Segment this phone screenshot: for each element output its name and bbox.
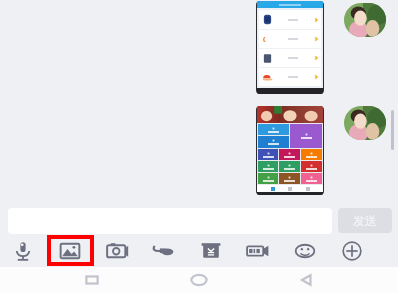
button[interactable]: Red packet (190, 234, 232, 267)
button[interactable]: Contact avatar (344, 106, 386, 140)
staticText: 发送 (353, 213, 377, 228)
button[interactable]: Home (175, 267, 223, 293)
button[interactable]: Emoji (284, 234, 326, 267)
button[interactable]: GIF (237, 234, 279, 267)
button[interactable]: Back (282, 267, 330, 293)
button[interactable]: Recents (68, 267, 116, 293)
button[interactable]: Voice message (2, 234, 44, 267)
button[interactable]: Shared screenshot (256, 1, 324, 94)
button[interactable]: Contact avatar (344, 3, 386, 37)
button[interactable]: More (331, 234, 373, 267)
button[interactable]: Shared screenshot (256, 106, 324, 195)
button[interactable]: Voice call (143, 234, 185, 267)
button[interactable]: Photo gallery (49, 234, 91, 267)
button[interactable]: Camera (96, 234, 138, 267)
button[interactable]: 发送 (338, 208, 392, 233)
